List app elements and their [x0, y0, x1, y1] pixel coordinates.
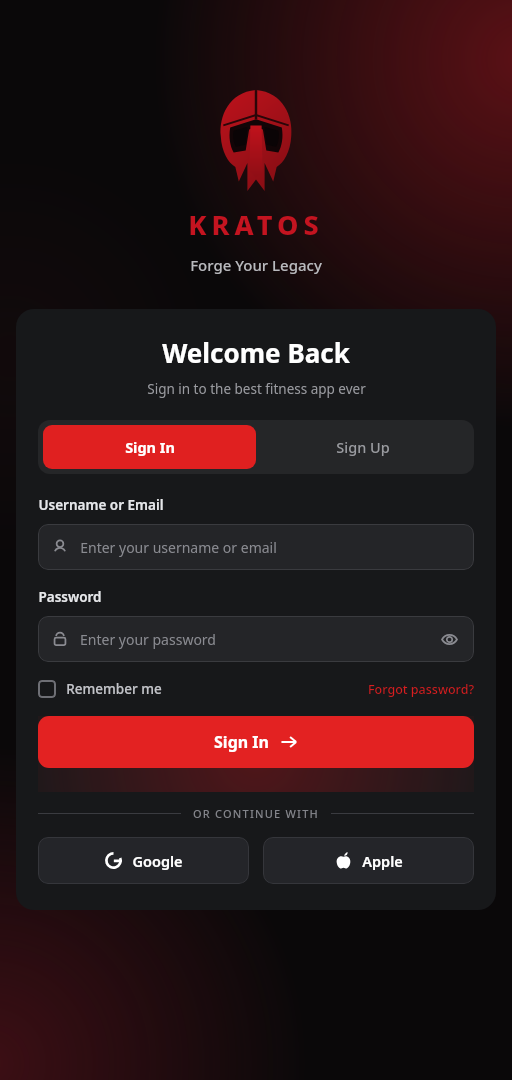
button[interactable]: Sign In — [43, 425, 256, 469]
button[interactable]: Sign Up — [256, 425, 469, 469]
button[interactable]: Forgot password? — [368, 681, 474, 698]
staticText: Sign in to the best fitness app ever — [147, 380, 366, 398]
staticText: Forge Your Legacy — [190, 255, 322, 275]
staticText: Enter your password — [80, 630, 216, 649]
staticText: Sign In — [214, 731, 269, 753]
staticText: KRATOS — [188, 206, 324, 243]
staticText: Remember me — [66, 680, 162, 698]
staticText: Sign Up — [336, 437, 390, 457]
staticText: Google — [132, 851, 183, 871]
staticText: Enter your username or email — [80, 538, 277, 557]
button[interactable]: Google — [38, 837, 249, 884]
button[interactable]: Show password — [438, 628, 460, 650]
staticText: Sign In — [125, 437, 175, 457]
button[interactable]: Apple — [263, 837, 474, 884]
staticText: Apple — [362, 851, 403, 871]
other: Google — [105, 852, 122, 869]
other: Apple — [335, 852, 352, 869]
staticText: Welcome Back — [162, 335, 350, 370]
button[interactable]: Enter your username or email — [38, 524, 474, 570]
button[interactable]: Remember me — [38, 680, 162, 698]
staticText: OR CONTINUE WITH — [193, 806, 319, 821]
staticText: Password — [38, 588, 102, 606]
staticText: Username or Email — [38, 496, 164, 514]
button[interactable]: Enter your password — [38, 616, 474, 662]
staticText: Forgot password? — [368, 681, 474, 698]
button[interactable]: Sign In — [38, 716, 474, 768]
